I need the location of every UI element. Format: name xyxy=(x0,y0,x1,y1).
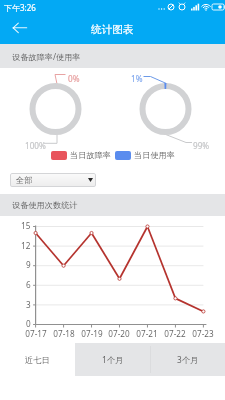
staticText: 3 xyxy=(26,299,31,310)
staticText: 07-22 xyxy=(161,328,189,339)
button[interactable]: 3个月 xyxy=(150,343,225,376)
staticText: 07-23 xyxy=(189,328,217,339)
staticText: 当日使用率 xyxy=(134,150,175,160)
staticText: 0 xyxy=(26,318,31,329)
staticText: 9 xyxy=(26,259,31,270)
button[interactable]: 近七日 xyxy=(0,343,75,376)
staticText: 99% xyxy=(193,140,210,151)
staticText: 07-19 xyxy=(78,328,106,339)
staticText: 0% xyxy=(68,73,80,84)
staticText: 全部 xyxy=(16,175,33,185)
staticText: 6 xyxy=(26,279,31,290)
staticText: 下午3:26 xyxy=(4,2,36,13)
staticText: 15 xyxy=(21,220,31,231)
staticText: 3个月 xyxy=(177,354,199,365)
staticText: 07-18 xyxy=(50,328,78,339)
staticText: 1% xyxy=(131,73,143,84)
staticText: 当日故障率 xyxy=(70,150,111,160)
staticText: 07-20 xyxy=(105,328,133,339)
button[interactable]: Back xyxy=(0,16,36,44)
staticText: 统计图表 xyxy=(91,23,134,36)
staticText: 1个月 xyxy=(102,354,124,365)
staticText: 设备使用次数统计 xyxy=(12,200,78,210)
staticText: 07-17 xyxy=(22,328,50,339)
button[interactable]: 全部 xyxy=(10,173,96,187)
staticText: 100% xyxy=(25,140,46,151)
staticText: 07-21 xyxy=(133,328,161,339)
staticText: 设备故障率/使用率 xyxy=(12,51,81,62)
button[interactable]: 1个月 xyxy=(75,343,150,376)
staticText: 12 xyxy=(21,240,31,251)
staticText: 近七日 xyxy=(25,355,50,365)
